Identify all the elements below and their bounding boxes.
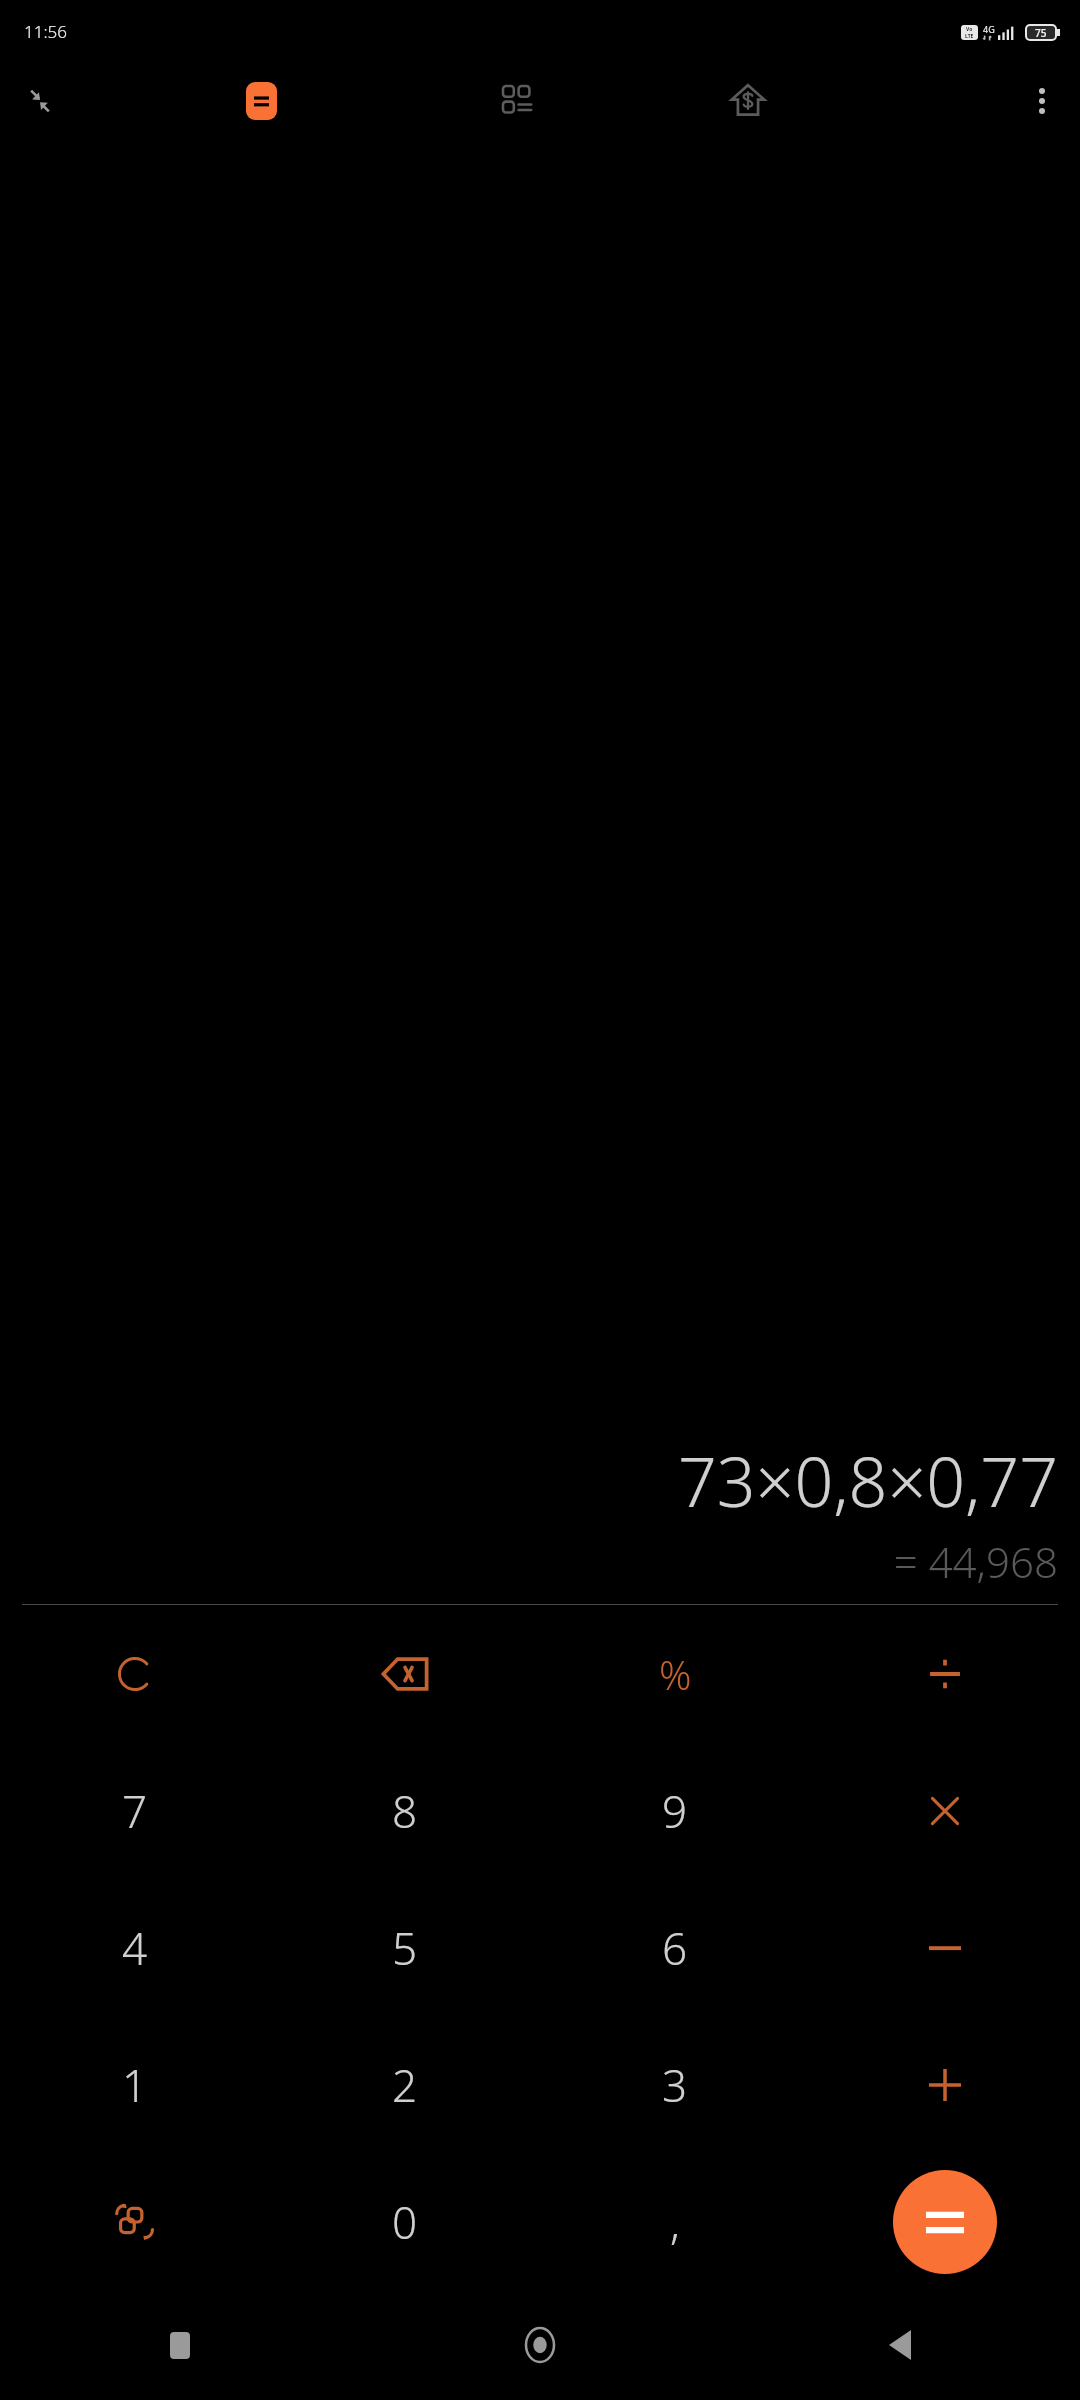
button[interactable]: Back: [720, 2290, 1080, 2400]
button[interactable]: Collapse: [12, 73, 68, 129]
staticText: 5: [392, 1918, 418, 1978]
button[interactable]: Mortgage calculator: [718, 71, 778, 131]
staticText: 8: [392, 1781, 418, 1841]
button[interactable]: 1: [0, 2016, 270, 2153]
button[interactable]: [810, 1742, 1080, 1879]
staticText: 9: [662, 1781, 688, 1841]
button[interactable]: [810, 2016, 1080, 2153]
staticText: LTE: [965, 33, 974, 40]
staticText: 4G: [983, 23, 995, 35]
button[interactable]: Unit converter: [490, 73, 546, 129]
staticText: 6: [662, 1918, 688, 1978]
staticText: 73×0,8×0,77: [22, 1434, 1058, 1527]
button[interactable]: %: [540, 1605, 810, 1742]
button[interactable]: 7: [0, 1742, 270, 1879]
button[interactable]: [810, 1605, 1080, 1742]
staticText: Vo: [966, 26, 973, 33]
button[interactable]: 4: [0, 1879, 270, 2016]
button[interactable]: [0, 1605, 270, 1742]
staticText: 2: [392, 2055, 418, 2115]
staticText: %: [659, 1647, 692, 1701]
staticText: 7: [122, 1781, 148, 1841]
staticText: 1: [122, 2055, 148, 2115]
button[interactable]: 2: [270, 2016, 540, 2153]
button[interactable]: Recents: [0, 2290, 360, 2400]
staticText: 3: [662, 2055, 688, 2115]
staticText: 75: [1035, 26, 1047, 39]
button[interactable]: 6: [540, 1879, 810, 2016]
button[interactable]: 5: [270, 1879, 540, 2016]
button[interactable]: [270, 1605, 540, 1742]
button[interactable]: 9: [540, 1742, 810, 1879]
button[interactable]: [810, 1879, 1080, 2016]
button[interactable]: 0: [270, 2153, 540, 2290]
button[interactable]: 3: [540, 2016, 810, 2153]
staticText: 11:56: [24, 20, 67, 43]
button[interactable]: Calculator mode: [233, 73, 289, 129]
button[interactable]: Home: [360, 2290, 720, 2400]
staticText: 4: [122, 1918, 148, 1978]
button[interactable]: ,: [540, 2153, 810, 2290]
button[interactable]: Equals: [893, 2170, 997, 2274]
staticText: ,: [670, 2192, 680, 2252]
button[interactable]: 8: [270, 1742, 540, 1879]
staticText: = 44,968: [22, 1533, 1058, 1590]
button[interactable]: More options: [1014, 73, 1070, 129]
button[interactable]: [0, 2153, 270, 2290]
staticText: 0: [392, 2192, 418, 2252]
